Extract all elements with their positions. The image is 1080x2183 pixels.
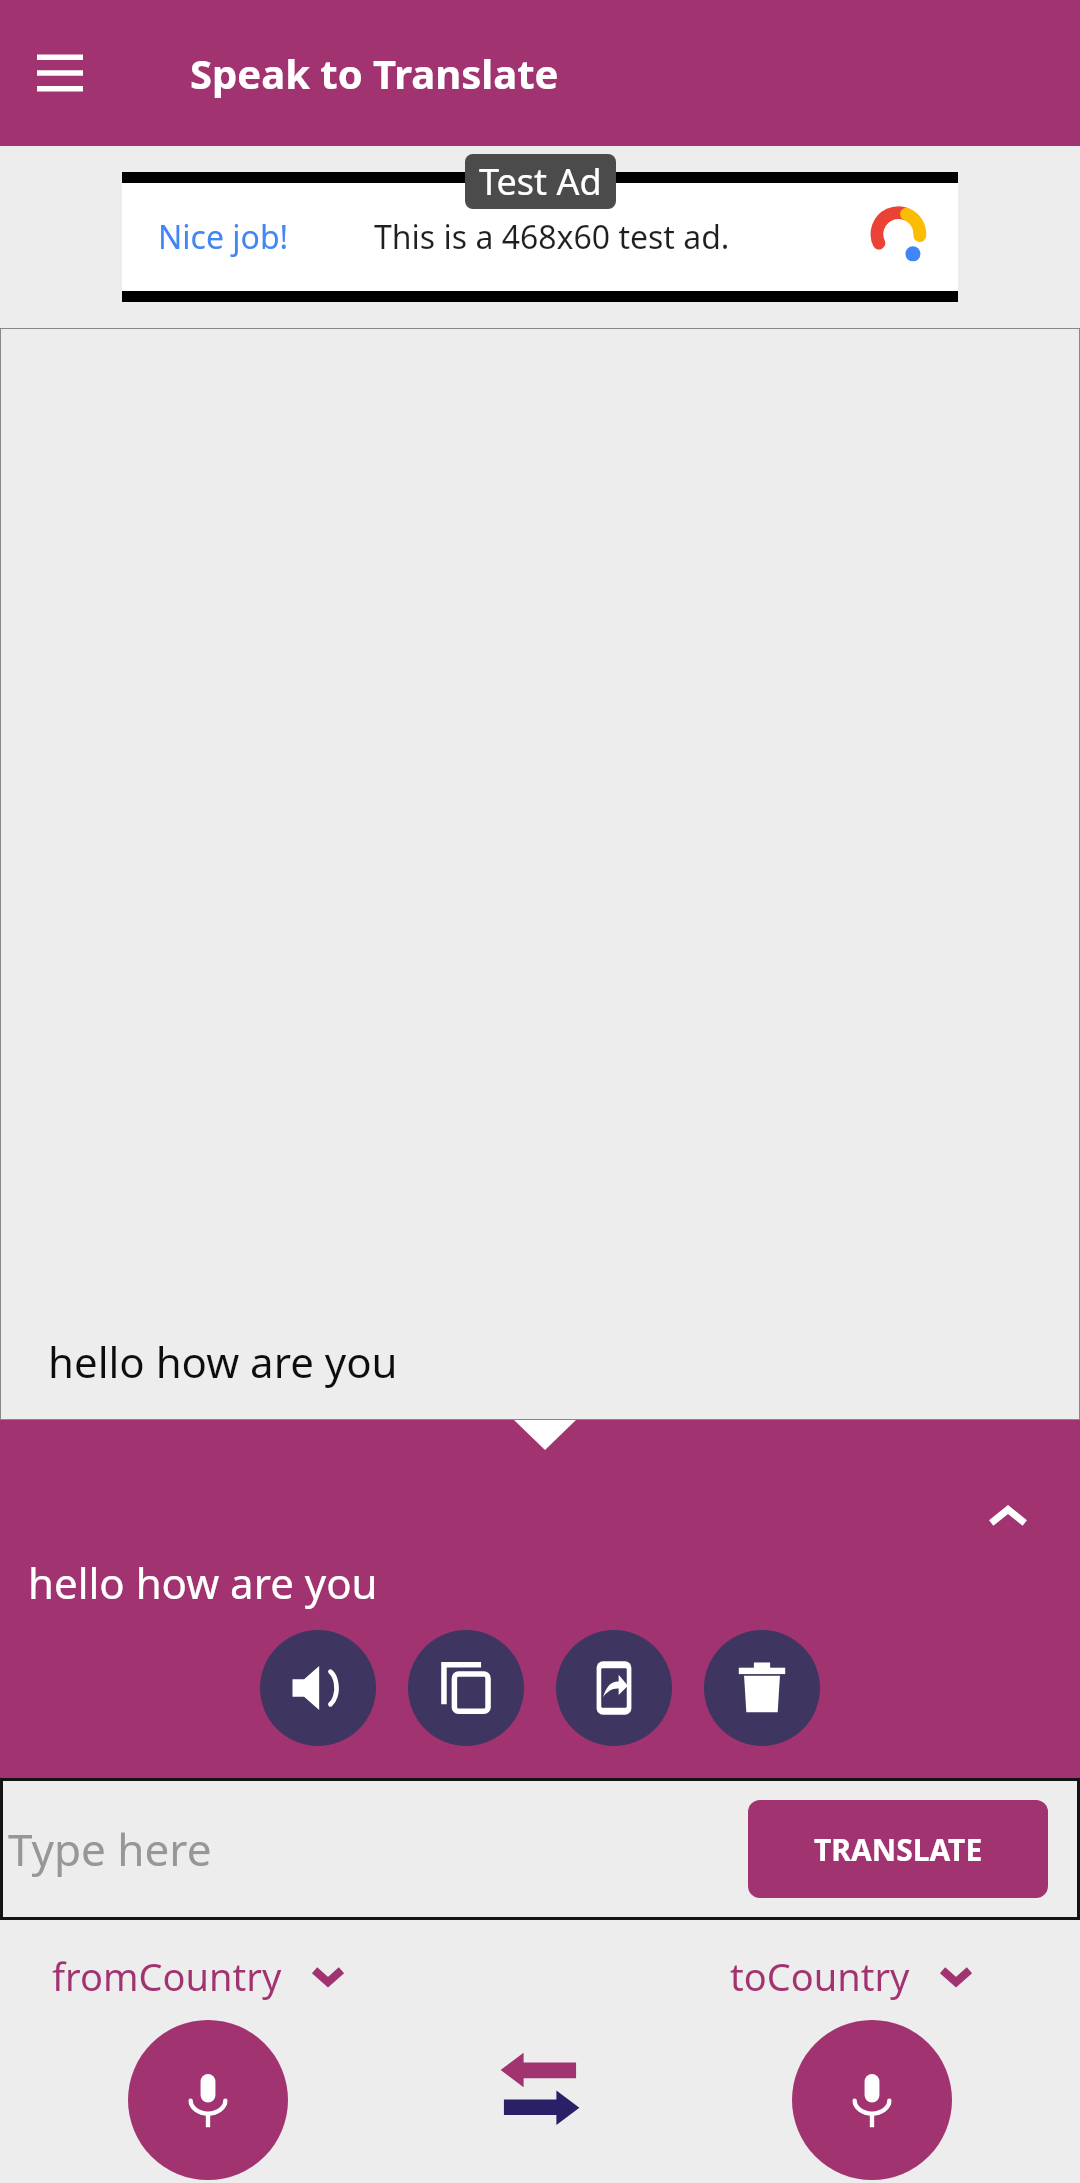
staticText: Nice job! [158, 215, 289, 259]
staticText: toCountry [730, 1950, 910, 2002]
staticText: Type here [8, 1819, 212, 1879]
button[interactable]: Open navigation menu [24, 37, 96, 109]
button[interactable]: hello how are you [0, 328, 1080, 1420]
staticText: TRANSLATE [814, 1829, 983, 1870]
staticText: hello how are you [28, 1554, 378, 1611]
button[interactable]: Share translation [556, 1630, 672, 1746]
button[interactable]: toCountry [730, 1950, 972, 2002]
button[interactable]: Nice job! [122, 172, 958, 302]
button[interactable]: Speak in source language [128, 2020, 288, 2180]
staticText: Test Ad [479, 157, 602, 206]
button[interactable]: TRANSLATE [748, 1800, 1048, 1898]
button[interactable]: Speak in target language [792, 2020, 952, 2180]
button[interactable]: Delete translation [704, 1630, 820, 1746]
button[interactable]: fromCountry [52, 1950, 344, 2002]
button[interactable]: Copy translation [408, 1630, 524, 1746]
button[interactable]: Swap languages [492, 2040, 588, 2136]
staticText: hello how are you [48, 1333, 398, 1390]
button[interactable]: Speak translation [260, 1630, 376, 1746]
staticText: This is a 468x60 test ad. [374, 215, 730, 259]
staticText: fromCountry [52, 1950, 282, 2002]
button[interactable]: Expand translation [972, 1482, 1044, 1554]
staticText: Speak to Translate [190, 46, 559, 100]
